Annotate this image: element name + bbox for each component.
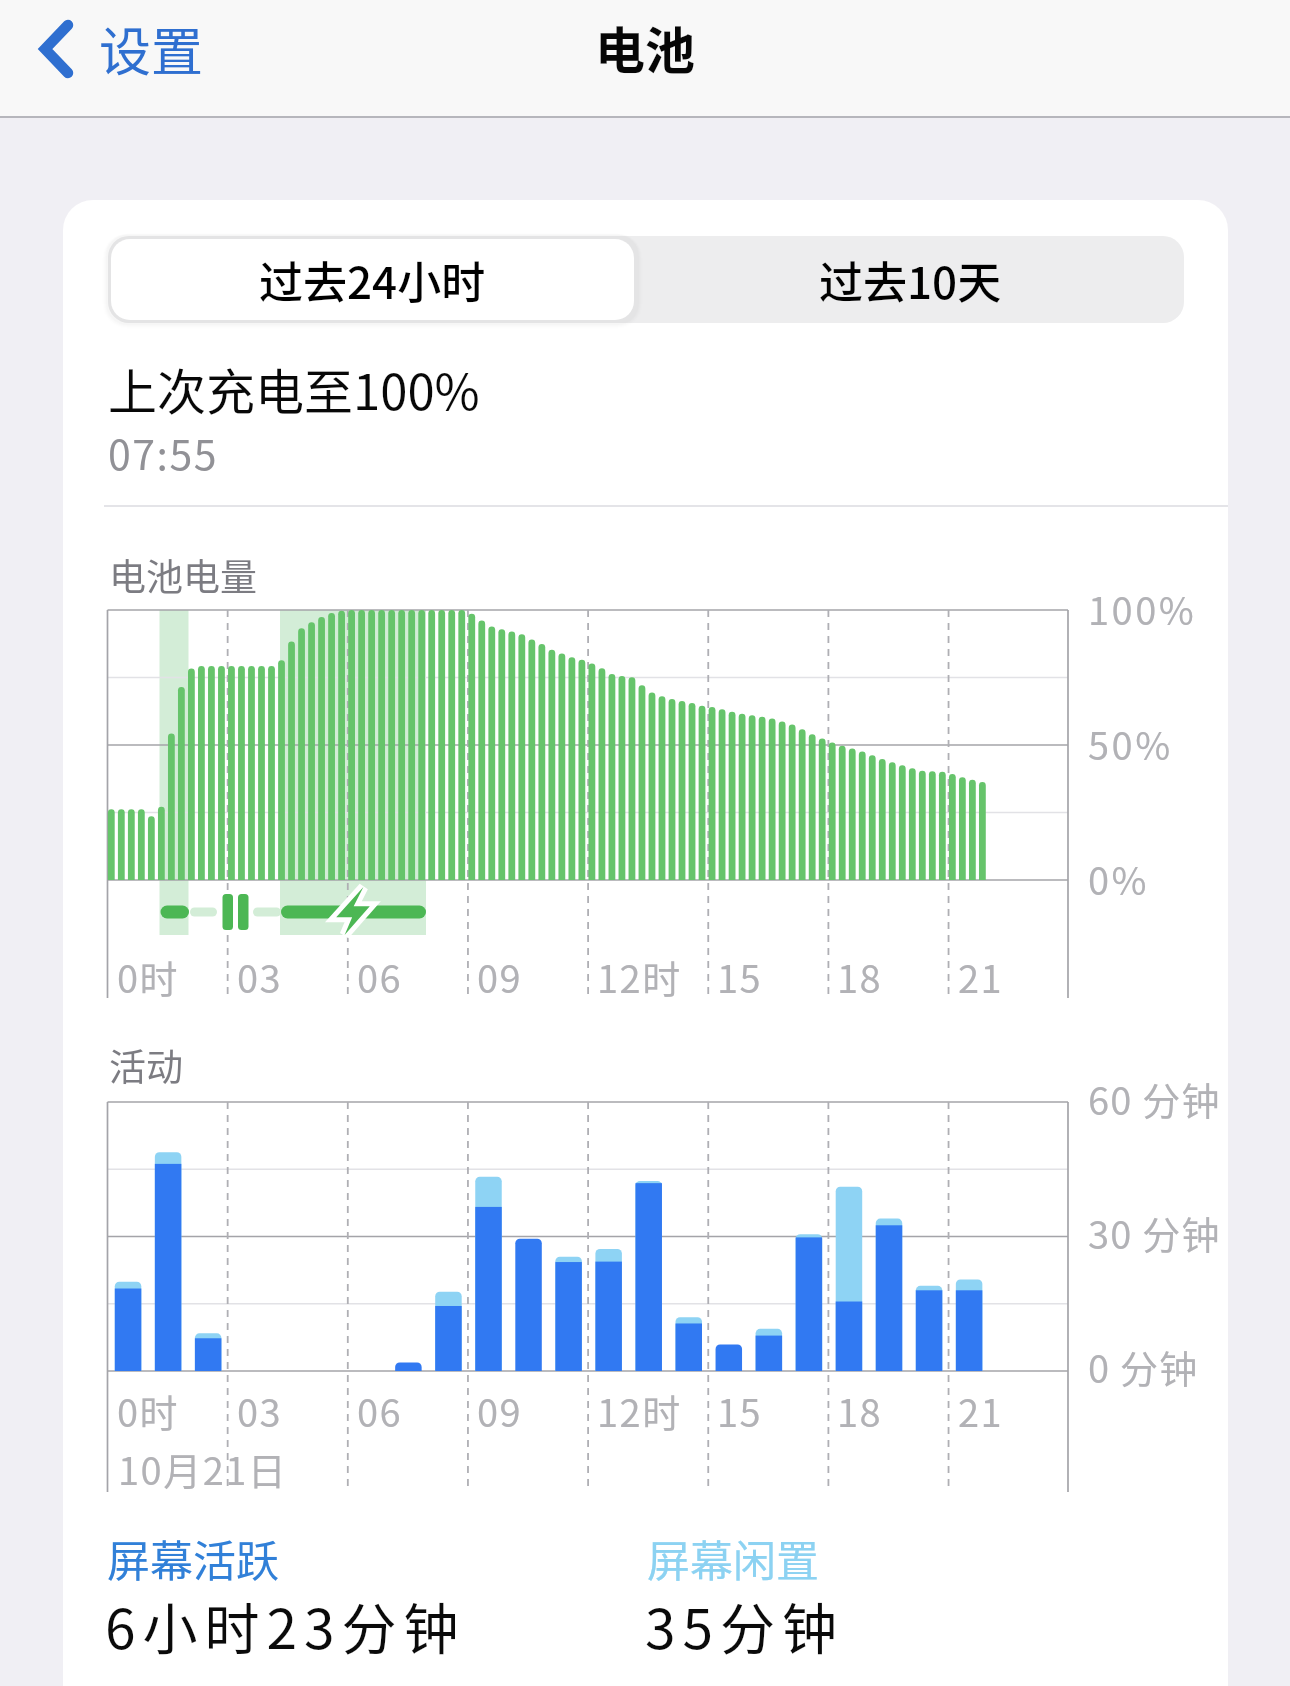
staticText: 21 — [958, 1383, 1004, 1438]
button[interactable]: 过去24小时 — [111, 239, 634, 320]
staticText: 15 — [717, 1383, 763, 1438]
staticText: 06 — [357, 1383, 403, 1438]
staticText: 60 分钟 — [1088, 1071, 1221, 1126]
staticText: 10月21日 — [118, 1441, 288, 1496]
staticText: 0时 — [117, 1383, 180, 1438]
staticText: 18 — [837, 949, 883, 1004]
staticText: 06 — [357, 949, 403, 1004]
staticText: 过去10天 — [819, 248, 1002, 312]
staticText: 12时 — [597, 949, 682, 1004]
staticText: 屏幕闲置 — [647, 1527, 819, 1589]
staticText: 07:55 — [108, 422, 218, 481]
staticText: 0% — [1088, 851, 1150, 906]
staticText: 电池 — [595, 11, 695, 83]
staticText: 上次充电至100% — [108, 353, 480, 424]
staticText: 设置 — [99, 11, 204, 86]
staticText: 6小时23分钟 — [105, 1585, 466, 1665]
staticText: 50% — [1088, 716, 1173, 771]
staticText: 21 — [958, 949, 1004, 1004]
staticText: 100% — [1088, 581, 1197, 636]
staticText: 电池电量 — [109, 548, 257, 602]
staticText: 0时 — [117, 949, 180, 1004]
staticText: 0 分钟 — [1088, 1339, 1199, 1394]
other: Back — [40, 20, 73, 78]
button[interactable]: 过去10天 — [637, 236, 1184, 323]
staticText: 12时 — [597, 1383, 682, 1438]
staticText: 09 — [477, 949, 523, 1004]
staticText: 30 分钟 — [1088, 1205, 1221, 1260]
staticText: 03 — [237, 1383, 283, 1438]
button[interactable]: Back — [0, 5, 224, 92]
staticText: 18 — [837, 1383, 883, 1438]
staticText: 09 — [477, 1383, 523, 1438]
staticText: 35分钟 — [645, 1585, 845, 1665]
staticText: 15 — [717, 949, 763, 1004]
staticText: 03 — [237, 949, 283, 1004]
staticText: 活动 — [109, 1038, 183, 1092]
staticText: 过去24小时 — [259, 248, 486, 312]
staticText: 屏幕活跃 — [107, 1527, 279, 1589]
